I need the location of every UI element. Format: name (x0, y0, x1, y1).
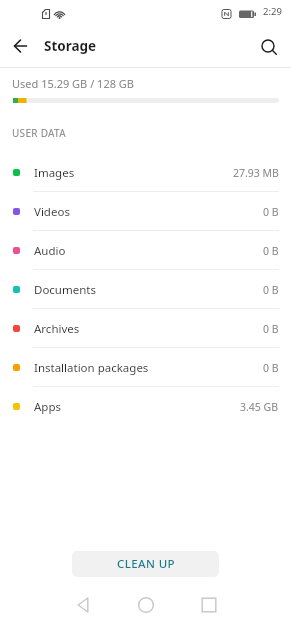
staticText: Used 15.29 GB / 128 GB (12, 76, 134, 91)
staticText: USER DATA (12, 126, 66, 140)
button[interactable]: Archives (0, 309, 291, 348)
button[interactable] (201, 597, 217, 613)
staticText: Installation packages (34, 360, 149, 376)
staticText: 0 B (263, 322, 279, 336)
staticText: 0 B (263, 205, 279, 219)
staticText: Audio (34, 243, 66, 259)
staticText: 0 B (263, 283, 279, 297)
staticText: Documents (34, 282, 96, 298)
staticText: Storage (44, 37, 97, 55)
button[interactable]: Audio (0, 231, 291, 270)
button[interactable] (0, 24, 40, 64)
staticText: CLEAN UP (117, 556, 175, 572)
button[interactable] (251, 24, 291, 64)
staticText: 0 B (263, 244, 279, 258)
staticText: Archives (34, 321, 80, 337)
staticText: Apps (34, 399, 62, 415)
button[interactable] (75, 597, 91, 613)
staticText: 27.93 MB (233, 166, 279, 180)
staticText: 2:29 (263, 5, 282, 18)
button[interactable]: Documents (0, 270, 291, 309)
button[interactable]: CLEAN UP (72, 551, 219, 577)
button[interactable]: Images (0, 153, 291, 192)
button[interactable]: Apps (0, 387, 291, 426)
staticText: Videos (34, 204, 70, 220)
button[interactable]: Videos (0, 192, 291, 231)
staticText: Images (34, 165, 75, 181)
button[interactable]: Installation packages (0, 348, 291, 387)
staticText: 3.45 GB (240, 400, 279, 414)
staticText: 0 B (263, 361, 279, 375)
button[interactable] (138, 597, 154, 613)
